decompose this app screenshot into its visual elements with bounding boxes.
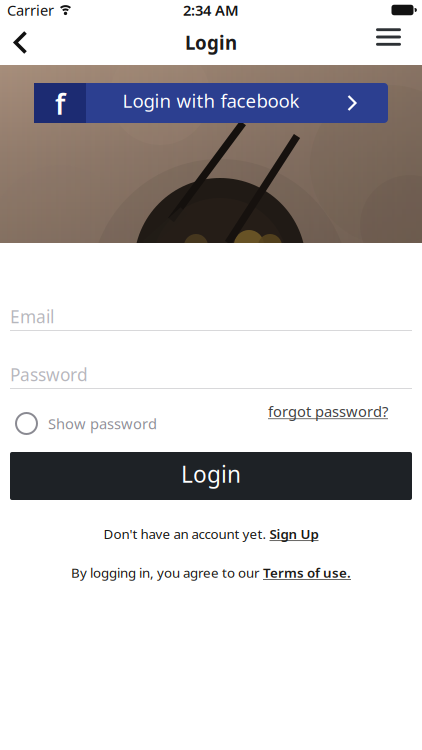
button[interactable]: Don't have an account yet. Sign Up: [103, 525, 318, 543]
staticText: Show password: [48, 414, 157, 433]
button[interactable]: Login: [10, 452, 412, 500]
button[interactable]: Password: [10, 367, 412, 389]
staticText: Login: [181, 459, 241, 489]
button[interactable]: By logging in, you agree to our Terms of…: [71, 564, 351, 581]
staticText: f: [55, 85, 65, 123]
staticText: By logging in, you agree to our Terms of…: [71, 564, 351, 581]
staticText: Password: [10, 363, 88, 386]
staticText: Login: [185, 30, 237, 55]
staticText: 2:34 AM: [183, 0, 239, 20]
button[interactable]: forgot password?: [268, 401, 412, 421]
staticText: Carrier: [7, 0, 54, 20]
button[interactable]: Email: [10, 309, 412, 331]
button[interactable]: Show password: [16, 413, 157, 434]
button[interactable]: Menu: [376, 23, 422, 62]
staticText: Login with facebook: [122, 88, 299, 113]
staticText: forgot password?: [268, 401, 388, 421]
button[interactable]: f: [34, 83, 388, 123]
staticText: Don't have an account yet. Sign Up: [103, 525, 318, 543]
staticText: Email: [10, 305, 54, 328]
button[interactable]: Back: [0, 20, 26, 64]
